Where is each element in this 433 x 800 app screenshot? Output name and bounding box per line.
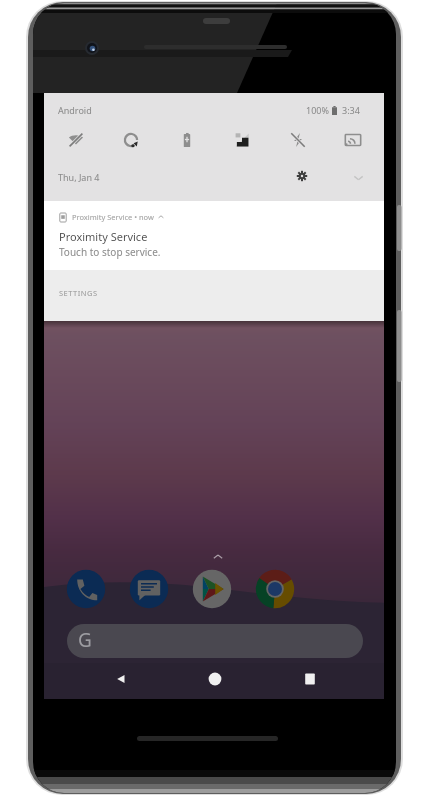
button[interactable]: SETTINGS	[44, 270, 384, 321]
button[interactable]: Chrome	[255, 569, 295, 609]
button[interactable]: Messages	[129, 569, 169, 609]
staticText: Thu, Jan 4	[58, 171, 100, 183]
staticText: Proximity Service • now	[72, 212, 154, 222]
button[interactable]: Auto-rotate	[117, 126, 145, 154]
button[interactable]: Back	[104, 662, 138, 696]
button[interactable]: Open app drawer	[210, 548, 226, 564]
button[interactable]: Mobile data	[228, 126, 256, 154]
button[interactable]: Recent apps	[293, 662, 327, 696]
button[interactable]: Phone	[66, 569, 106, 609]
button[interactable]: G	[67, 624, 363, 658]
staticText: G	[78, 627, 92, 653]
staticText: Touch to stop service.	[59, 245, 161, 259]
button[interactable]: Home	[198, 662, 232, 696]
button[interactable]: Expand quick settings	[346, 165, 370, 189]
staticText: Android	[58, 104, 92, 116]
button[interactable]: Wi-Fi off	[62, 126, 90, 154]
button[interactable]: Proximity Service • now	[44, 201, 384, 270]
button[interactable]: Battery Saver	[173, 126, 201, 154]
button[interactable]: Flashlight off	[284, 126, 312, 154]
button[interactable]: Cast screen	[339, 126, 367, 154]
button[interactable]: Settings	[290, 164, 314, 188]
button[interactable]: Play Store	[192, 569, 232, 609]
staticText: Proximity Service	[59, 229, 148, 244]
staticText: SETTINGS	[59, 288, 98, 298]
staticText: 3:34	[342, 104, 360, 116]
staticText: 100%	[306, 104, 329, 116]
